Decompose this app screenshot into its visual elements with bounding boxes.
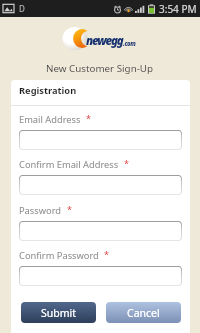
staticText: Password: [19, 204, 62, 217]
staticText: *: [67, 203, 72, 215]
staticText: .com: [123, 40, 136, 48]
staticText: Registration: [19, 84, 77, 97]
staticText: *: [86, 112, 91, 124]
button[interactable]: Cancel: [106, 302, 181, 323]
staticText: D: [19, 3, 25, 14]
button[interactable]: [19, 266, 182, 286]
staticText: *: [104, 248, 109, 260]
staticText: Confirm Password: [19, 249, 99, 262]
staticText: Email Address: [19, 113, 81, 126]
button[interactable]: [19, 221, 182, 241]
staticText: Confirm Email Address: [19, 158, 119, 171]
staticText: 3:54 PM: [159, 2, 197, 16]
button[interactable]: [19, 175, 182, 195]
staticText: New Customer Sign-Up: [46, 62, 154, 75]
staticText: newegg: [86, 33, 123, 49]
staticText: *: [124, 157, 129, 169]
button[interactable]: Submit: [21, 302, 96, 323]
button[interactable]: [19, 130, 182, 150]
staticText: Submit: [41, 306, 77, 320]
staticText: Cancel: [127, 306, 160, 320]
